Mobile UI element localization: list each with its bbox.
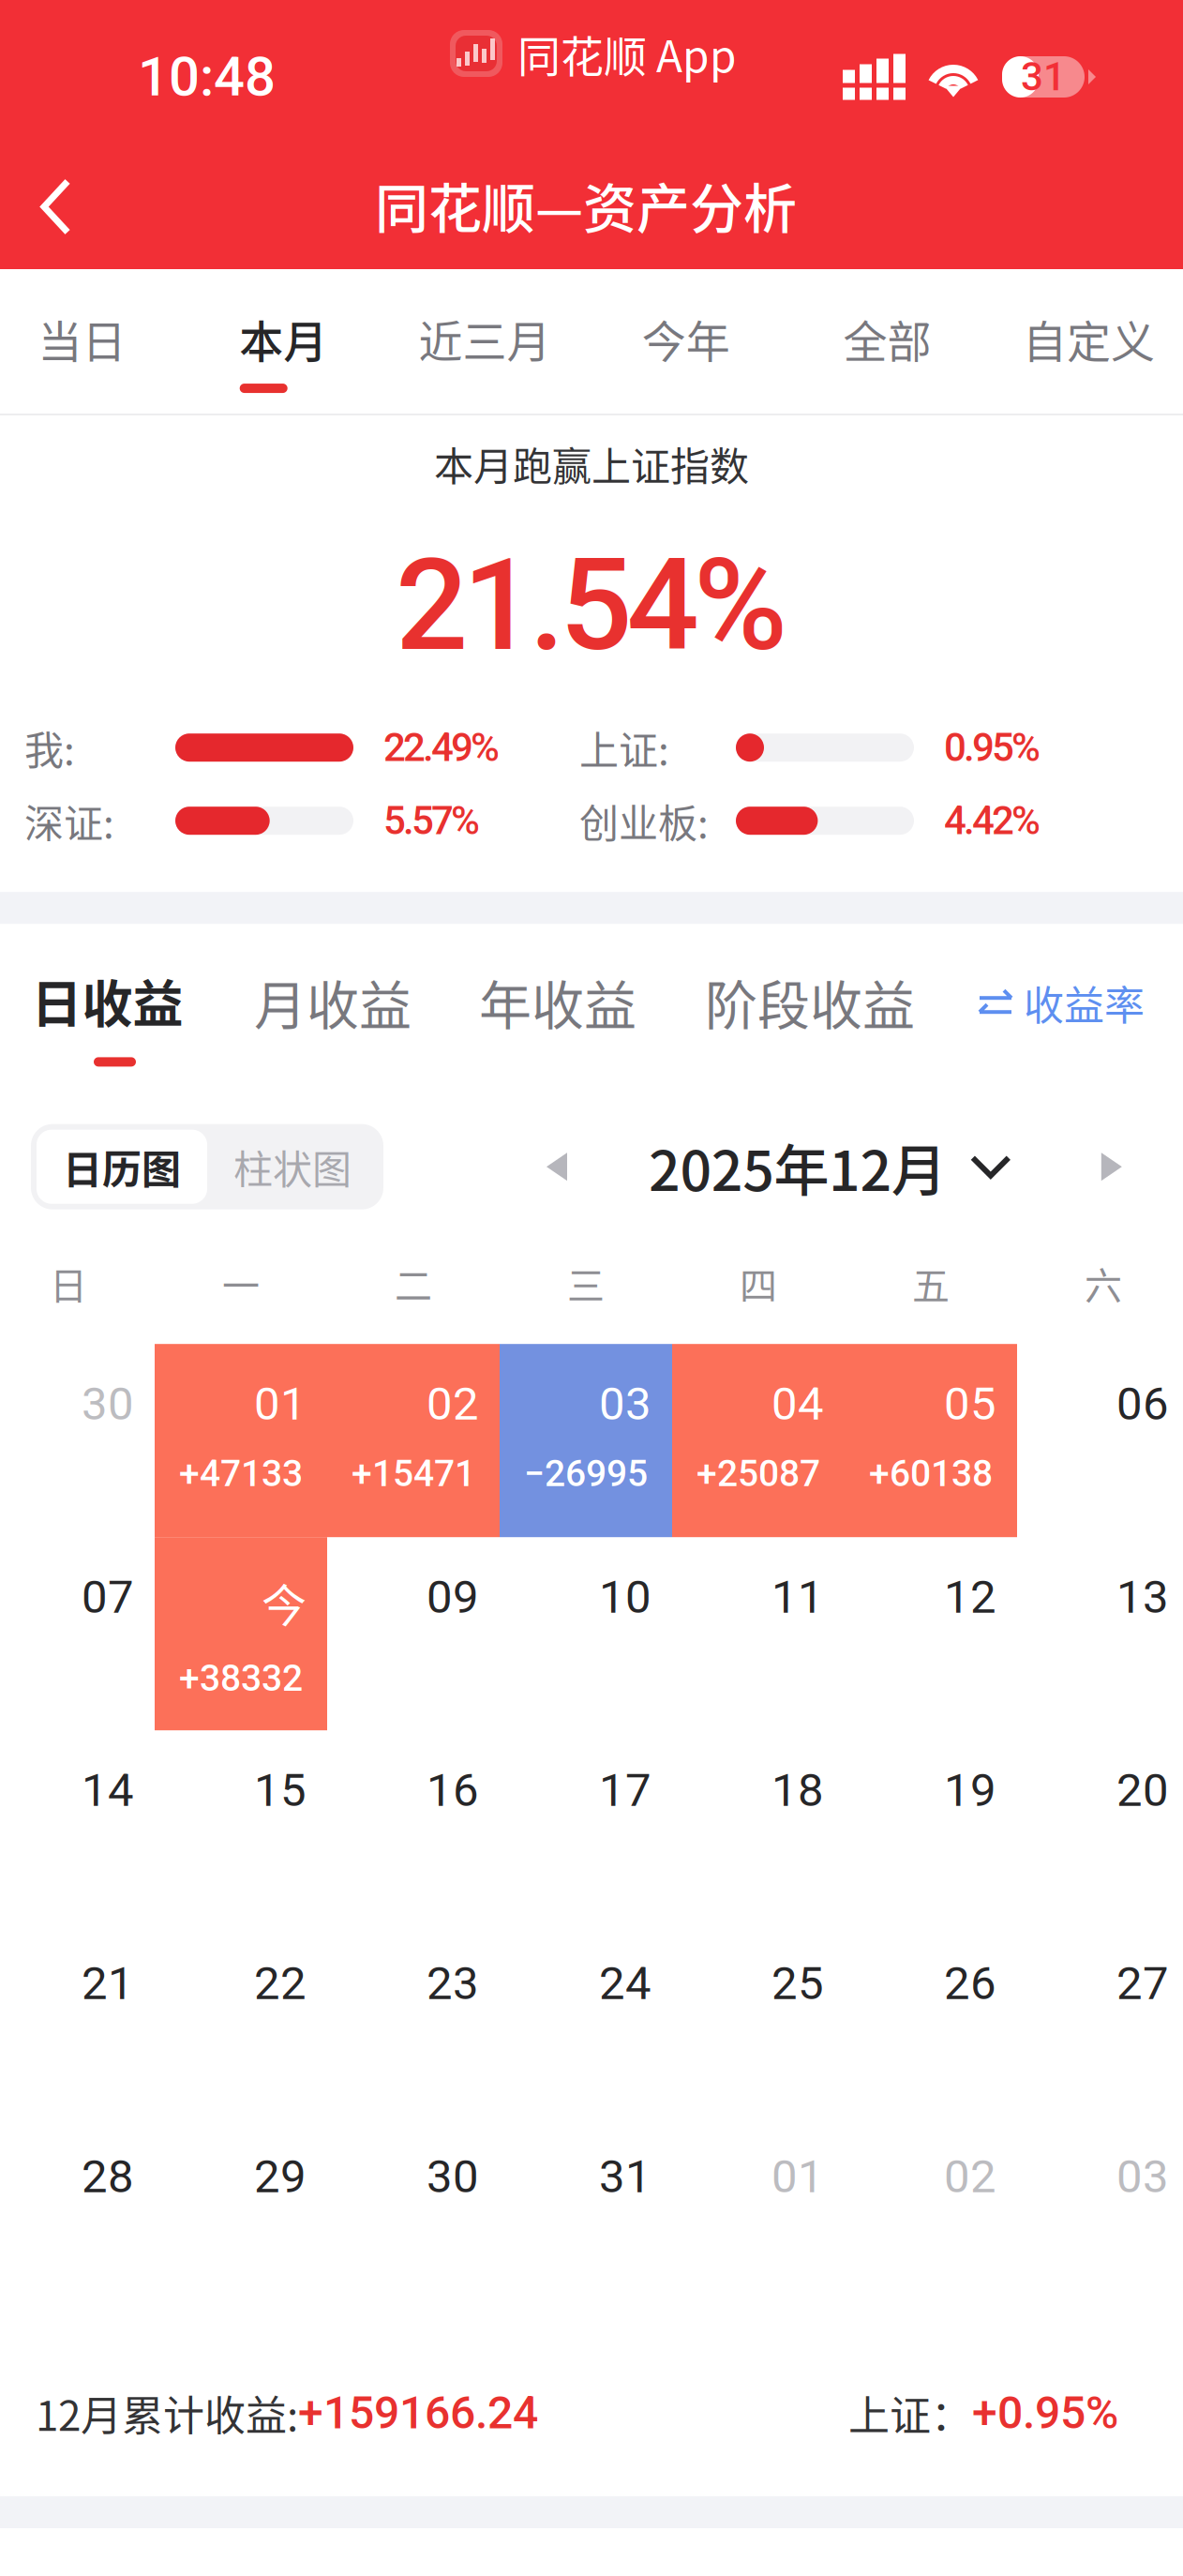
staticText: +60138 [869, 1452, 993, 1495]
staticText: 本月跑赢上证指数 [434, 435, 749, 492]
staticText: 近三月 [419, 307, 551, 371]
staticText: 10 [599, 1570, 651, 1624]
staticText: +38332 [179, 1657, 303, 1700]
staticText: 21.54% [396, 531, 787, 680]
staticText: 27 [1116, 1956, 1169, 2010]
button[interactable]: 日收益 [29, 964, 186, 1070]
button[interactable]: 全部 [787, 269, 988, 414]
button[interactable]: 收益率 [979, 964, 1145, 1020]
staticText: 日 [50, 1256, 87, 1310]
staticText: 31 [1021, 54, 1066, 100]
staticText: 22 [254, 1956, 307, 2010]
staticText: 0.95% [944, 725, 1041, 771]
staticText: 自定义 [1023, 307, 1155, 371]
staticText: +47133 [179, 1452, 303, 1495]
staticText: 01 [771, 2150, 824, 2203]
staticText: 22.49% [383, 725, 500, 771]
staticText: +25087 [696, 1452, 820, 1495]
staticText: +15471 [352, 1452, 475, 1495]
staticText: 19 [944, 1763, 996, 1817]
staticText: 上证： [848, 2383, 972, 2443]
staticText: 深证: [24, 792, 114, 849]
button[interactable]: 自定义 [988, 269, 1183, 414]
staticText: 26 [944, 1956, 996, 2010]
staticText: 4.42% [944, 798, 1041, 844]
button[interactable]: 年收益 [478, 964, 637, 1020]
staticText: 上证: [579, 719, 669, 776]
staticText: 11 [771, 1570, 824, 1624]
staticText: 二 [395, 1256, 432, 1310]
staticText: 24 [599, 1956, 651, 2010]
staticText: 今年 [642, 307, 730, 371]
button[interactable]: 阶段收益 [704, 964, 916, 1020]
staticText: 同花顺—资产分析 [375, 166, 797, 244]
button[interactable]: 选择月份 [963, 1125, 1018, 1209]
staticText: 一 [222, 1256, 260, 1310]
staticText: 18 [771, 1763, 824, 1817]
button[interactable]: 下一月 [1088, 1125, 1135, 1209]
staticText: 13 [1116, 1570, 1169, 1624]
staticText: 2025年12月 [649, 1127, 947, 1207]
button[interactable]: 柱状图 [207, 1130, 378, 1204]
staticText: 01 [254, 1377, 307, 1431]
staticText: 日历图 [63, 1138, 181, 1195]
staticText: 07 [82, 1570, 134, 1624]
staticText: 年收益 [479, 964, 636, 1040]
staticText: 同花顺 App [517, 22, 737, 85]
staticText: 17 [599, 1763, 651, 1817]
staticText: 五 [912, 1256, 950, 1310]
staticText: 05 [944, 1377, 996, 1431]
button[interactable]: 近三月 [384, 269, 585, 414]
staticText: 今 [262, 1570, 307, 1635]
button[interactable]: 日历图 [37, 1130, 207, 1204]
staticText: 09 [427, 1570, 479, 1624]
staticText: 六 [1085, 1256, 1122, 1310]
button[interactable]: 2025年12月 [649, 1125, 947, 1209]
staticText: 阶段收益 [705, 964, 915, 1040]
staticText: 21 [82, 1956, 134, 2010]
staticText: 当日 [38, 307, 126, 371]
staticText: 10:48 [138, 45, 276, 109]
staticText: −26995 [524, 1452, 648, 1495]
staticText: 四 [740, 1256, 777, 1310]
staticText: 15 [254, 1763, 307, 1817]
staticText: 02 [427, 1377, 479, 1431]
staticText: 14 [82, 1763, 134, 1817]
staticText: +0.95% [972, 2386, 1118, 2439]
staticText: 02 [944, 2150, 996, 2203]
staticText: 04 [771, 1377, 824, 1431]
staticText: 16 [427, 1763, 479, 1817]
staticText: 12 [944, 1570, 996, 1624]
button[interactable]: 当日 [0, 269, 183, 414]
staticText: 20 [1116, 1763, 1169, 1817]
staticText: 月收益 [254, 964, 412, 1040]
button[interactable]: 本月 [183, 269, 384, 414]
staticText: 12月累计收益: [36, 2383, 298, 2443]
staticText: +159166.24 [298, 2386, 538, 2439]
staticText: 全部 [843, 307, 931, 371]
staticText: 29 [254, 2150, 307, 2203]
staticText: 我: [24, 719, 75, 776]
staticText: 本月 [239, 307, 327, 371]
staticText: 03 [599, 1377, 651, 1431]
staticText: 日收益 [31, 964, 183, 1038]
staticText: 30 [427, 2150, 479, 2203]
staticText: 柱状图 [233, 1138, 352, 1195]
staticText: 30 [82, 1377, 134, 1431]
staticText: 5.57% [383, 798, 480, 844]
staticText: 收益率 [1024, 973, 1145, 1032]
staticText: 03 [1116, 2150, 1169, 2203]
button[interactable]: 返回 [0, 131, 124, 269]
staticText: 28 [82, 2150, 134, 2203]
staticText: 25 [771, 1956, 824, 2010]
button[interactable]: 今年 [585, 269, 787, 414]
staticText: 创业板: [579, 792, 709, 849]
button[interactable]: 上一月 [533, 1125, 580, 1209]
staticText: 23 [427, 1956, 479, 2010]
staticText: 31 [599, 2150, 651, 2203]
staticText: 三 [567, 1256, 605, 1310]
button[interactable]: 月收益 [253, 964, 412, 1020]
staticText: 06 [1116, 1377, 1169, 1431]
